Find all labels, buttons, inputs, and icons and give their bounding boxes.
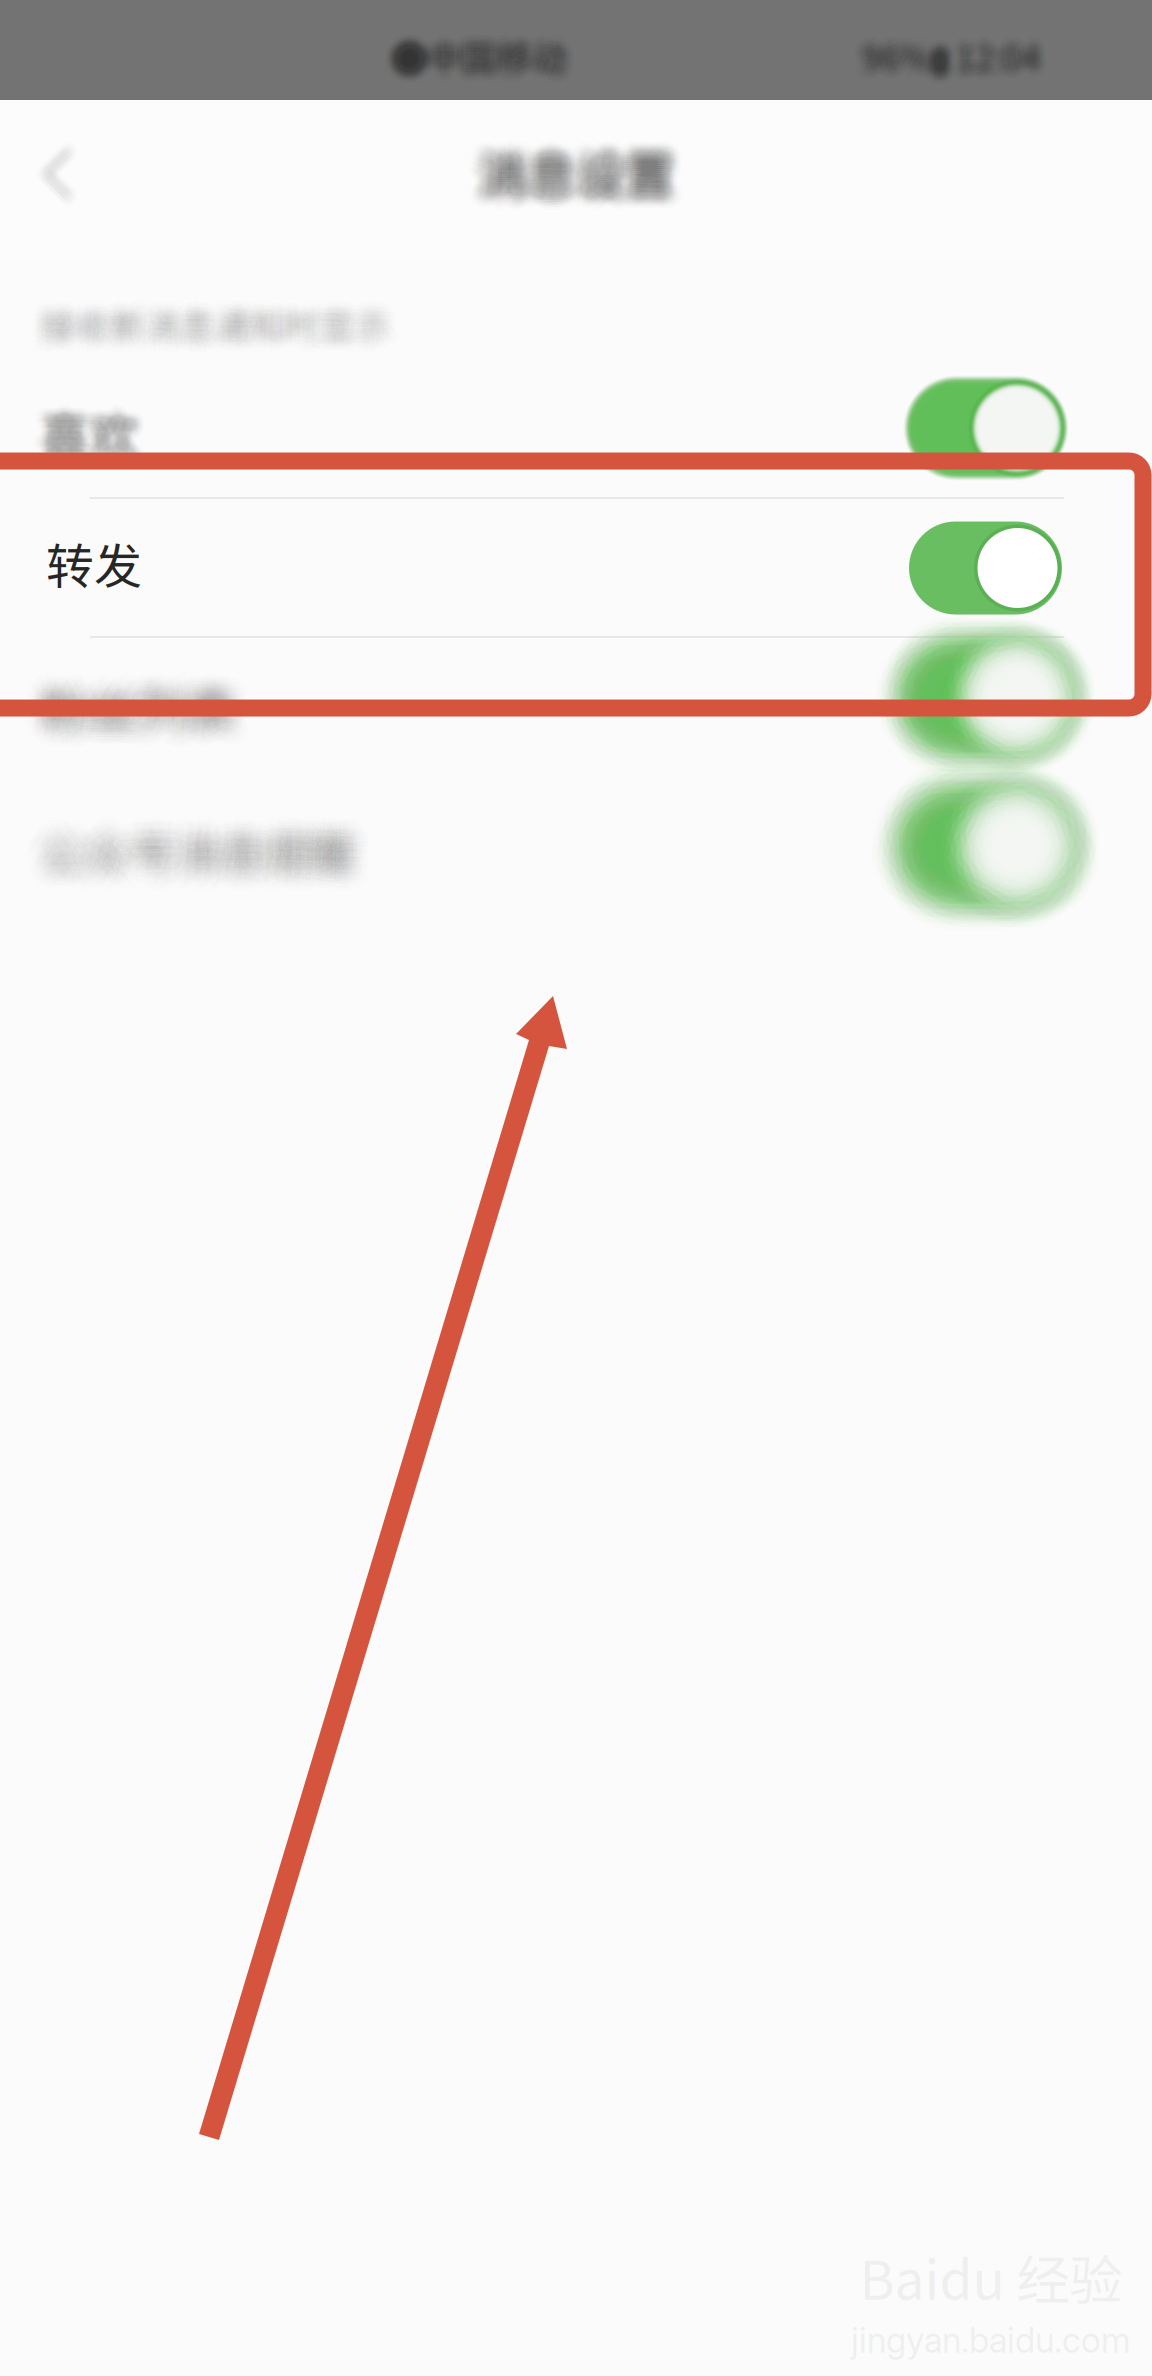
staticText: 96%▮ 12:04: [861, 35, 1040, 83]
staticText: 96%▮ 12:04: [861, 43, 1040, 91]
staticText: 粉丝列表: [26, 676, 222, 747]
staticText: jingyan.baidu.com: [851, 2319, 1131, 2361]
staticText: 96%▮ 12:04: [865, 42, 1044, 90]
staticText: ●中国移动: [400, 33, 575, 83]
staticText: 接收新消息通知时显示: [43, 300, 393, 350]
staticText: 公众号消息提醒: [55, 819, 370, 884]
staticText: ●中国移动: [392, 29, 567, 79]
staticText: 消息设置: [484, 137, 680, 208]
staticText: 接收新消息通知时显示: [38, 293, 388, 343]
staticText: 接收新消息通知时显示: [35, 309, 385, 359]
staticText: ●中国移动: [393, 31, 568, 81]
staticText: 粉丝列表: [37, 654, 233, 726]
staticText: ●中国移动: [402, 24, 577, 74]
staticText: ●中国移动: [395, 32, 570, 82]
staticText: 消息设置: [470, 133, 666, 204]
staticText: 接收新消息通知时显示: [39, 309, 389, 359]
staticText: 喜欢: [45, 390, 143, 461]
staticText: 公众号消息提醒: [36, 817, 351, 883]
staticText: ●中国移动: [380, 36, 555, 86]
staticText: 消息设置: [473, 136, 669, 208]
staticText: 公众号消息提醒: [38, 834, 353, 900]
staticText: 粉丝列表: [39, 675, 235, 747]
staticText: 公众号消息提醒: [53, 814, 368, 880]
staticText: 消息设置: [485, 141, 681, 213]
staticText: 接收新消息通知时显示: [46, 302, 396, 352]
button[interactable]: 转发: [0, 499, 1152, 637]
staticText: 粉丝列表: [57, 663, 253, 735]
staticText: 粉丝列表: [33, 688, 229, 760]
staticText: 粉丝列表: [34, 668, 230, 740]
staticText: 喜欢: [37, 396, 135, 467]
staticText: 公众号消息提醒: [55, 824, 370, 889]
staticText: 96%▮ 12:04: [865, 19, 1044, 67]
staticText: 消息设置: [482, 132, 678, 204]
staticText: 96%▮ 12:04: [859, 44, 1038, 92]
staticText: ●中国移动: [398, 34, 573, 84]
staticText: 接收新消息通知时显示: [41, 293, 391, 343]
staticText: ●中国移动: [402, 37, 577, 87]
staticText: ●中国移动: [381, 31, 556, 81]
staticText: 96%▮ 12:04: [873, 34, 1052, 82]
staticText: 消息设置: [469, 131, 665, 202]
staticText: 粉丝列表: [29, 679, 225, 751]
button[interactable]: 粉丝列表: [0, 622, 1152, 768]
staticText: 96%▮ 12:04: [867, 31, 1046, 79]
staticText: 接收新消息通知时显示: [36, 292, 386, 343]
staticText: 喜欢: [33, 404, 131, 475]
staticText: ●中国移动: [387, 41, 562, 92]
button[interactable]: 喜欢: [0, 353, 1152, 493]
staticText: 公众号消息提醒: [32, 818, 347, 884]
staticText: 96%▮ 12:04: [866, 26, 1045, 74]
staticText: 粉丝列表: [38, 686, 234, 757]
staticText: 粉丝列表: [34, 662, 230, 733]
staticText: 接收新消息通知时显示: [47, 308, 397, 358]
staticText: 96%▮ 12:04: [859, 21, 1038, 69]
staticText: 粉丝列表: [47, 670, 243, 741]
staticText: ●中国移动: [392, 40, 567, 90]
staticText: 消息设置: [466, 134, 662, 206]
staticText: 喜欢: [48, 392, 146, 463]
staticText: 喜欢: [39, 389, 137, 461]
staticText: 接收新消息通知时显示: [38, 287, 388, 337]
staticText: 喜欢: [35, 403, 133, 475]
staticText: 喜欢: [41, 397, 139, 469]
staticText: 粉丝列表: [33, 679, 229, 750]
staticText: 公众号消息提醒: [36, 824, 351, 889]
staticText: 消息设置: [476, 130, 672, 201]
staticText: ●中国移动: [381, 27, 556, 77]
staticText: 消息设置: [473, 147, 669, 218]
staticText: 消息设置: [484, 139, 680, 211]
staticText: ●中国移动: [404, 25, 579, 75]
staticText: 接收新消息通知时显示: [39, 289, 389, 339]
staticText: ●中国移动: [388, 26, 563, 77]
staticText: ●中国移动: [390, 18, 565, 68]
staticText: 公众号消息提醒: [60, 814, 375, 879]
staticText: 接收新消息通知时显示: [42, 308, 392, 358]
staticText: 消息设置: [476, 127, 672, 199]
staticText: 公众号消息提醒: [23, 812, 338, 878]
staticText: ●中国移动: [383, 32, 558, 82]
button[interactable]: 公众号消息提醒: [0, 771, 1152, 921]
staticText: 粉丝列表: [34, 659, 230, 731]
staticText: 粉丝列表: [38, 667, 234, 739]
staticText: ●中国移动: [398, 26, 573, 76]
staticText: 公众号消息提醒: [34, 812, 349, 877]
staticText: 96%▮ 12:04: [850, 37, 1029, 85]
button[interactable]: Back: [2, 118, 114, 230]
staticText: 喜欢: [41, 399, 139, 470]
staticText: 96%▮ 12:04: [863, 20, 1042, 68]
staticText: 96%▮ 12:04: [859, 31, 1038, 80]
staticText: 喜欢: [48, 396, 146, 467]
staticText: 96%▮ 12:04: [860, 23, 1039, 71]
staticText: ●中国移动: [392, 23, 567, 73]
staticText: 公众号消息提醒: [51, 804, 366, 870]
staticText: ●中国移动: [395, 23, 570, 73]
staticText: 喜欢: [35, 392, 133, 464]
staticText: 公众号消息提醒: [22, 809, 337, 875]
staticText: 96%▮ 12:04: [861, 33, 1040, 81]
staticText: 96%▮ 12:04: [851, 40, 1030, 88]
staticText: 消息设置: [471, 142, 667, 214]
staticText: 粉丝列表: [48, 682, 244, 753]
staticText: 96%▮ 12:04: [872, 38, 1051, 86]
